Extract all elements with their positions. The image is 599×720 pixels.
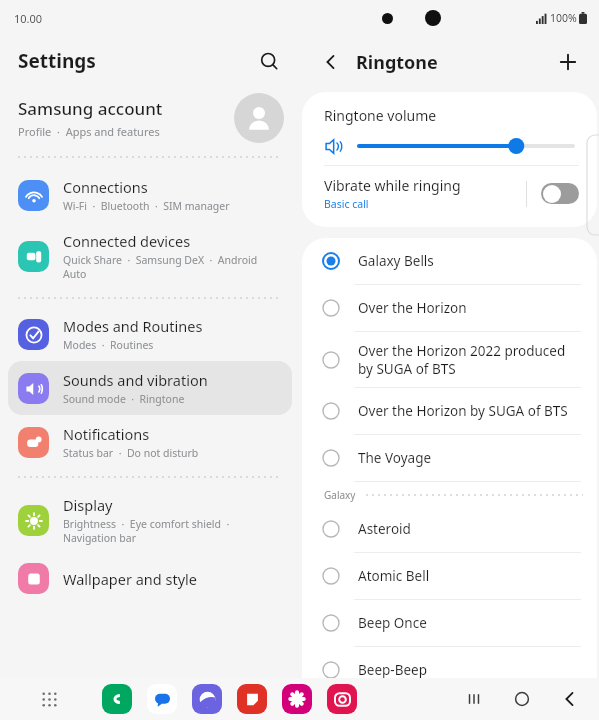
staticText: Connected devices — [63, 231, 191, 251]
staticText: Samsung account — [18, 97, 163, 120]
button[interactable]: The Voyage — [302, 435, 597, 482]
button[interactable]: Beep-Beep — [302, 647, 597, 694]
button[interactable]: Display — [8, 486, 292, 554]
button[interactable]: Internet — [192, 684, 222, 714]
staticText: Quick Share · Samsung DeX · Android Auto — [63, 253, 258, 281]
button[interactable]: Connected devices — [8, 222, 292, 290]
button[interactable]: Wallpaper and style — [8, 554, 292, 603]
staticText: Basic call — [324, 197, 369, 211]
button[interactable]: Sounds and vibration — [8, 361, 292, 415]
staticText: Beep-Beep — [358, 661, 427, 679]
button[interactable]: Gallery — [282, 684, 312, 714]
button[interactable]: Home — [507, 684, 537, 714]
staticText: 10.00 — [14, 11, 43, 26]
staticText: Modes and Routines — [63, 316, 203, 336]
staticText: Sound mode · Ringtone — [63, 392, 185, 406]
button[interactable]: Apps — [36, 686, 62, 712]
staticText: Over the Horizon by SUGA of BTS — [358, 402, 568, 420]
button[interactable]: Over the Horizon — [302, 285, 597, 332]
staticText: Atomic Bell — [358, 567, 430, 585]
button[interactable]: Instagram — [327, 684, 357, 714]
button[interactable]: Vibrate while ringing — [324, 166, 579, 221]
staticText: Asteroid — [358, 520, 411, 538]
button[interactable]: Samsung account — [0, 89, 300, 147]
staticText: Connections — [63, 177, 148, 197]
staticText: Brightness · Eye comfort shield · Naviga… — [63, 517, 230, 545]
staticText: Modes · Routines — [63, 338, 154, 352]
button[interactable]: Connections — [8, 168, 292, 222]
button[interactable]: Vibrate while ringing toggle — [541, 183, 579, 204]
button[interactable]: Notes — [237, 684, 267, 714]
staticText: 100% — [550, 11, 577, 25]
staticText: Vibrate while ringing — [324, 176, 461, 195]
staticText: Ringtone volume — [324, 106, 437, 125]
staticText: Galaxy Bells — [358, 252, 434, 270]
button[interactable] — [359, 135, 573, 157]
button[interactable]: Asteroid — [302, 506, 597, 553]
button[interactable]: Back — [314, 45, 348, 79]
staticText: Display — [63, 495, 113, 515]
staticText: Wi-Fi · Bluetooth · SIM manager — [63, 199, 230, 213]
staticText: Profile · Apps and features — [18, 124, 160, 139]
staticText: Beep Once — [358, 614, 427, 632]
staticText: Wallpaper and style — [63, 569, 197, 589]
button[interactable]: Notifications — [8, 415, 292, 469]
staticText: Galaxy — [324, 488, 356, 502]
staticText: Sounds and vibration — [63, 370, 208, 390]
staticText: Over the Horizon 2022 produced by SUGA o… — [358, 342, 566, 378]
staticText: Over the Horizon — [358, 299, 467, 317]
staticText: Status bar · Do not disturb — [63, 446, 199, 460]
button[interactable]: Beep Once — [302, 600, 597, 647]
button[interactable]: Over the Horizon by SUGA of BTS — [302, 388, 597, 435]
button[interactable]: Phone — [102, 684, 132, 714]
button[interactable]: Messages — [147, 684, 177, 714]
button[interactable]: Recents — [459, 684, 489, 714]
staticText: Notifications — [63, 424, 150, 444]
button[interactable]: Atomic Bell — [302, 553, 597, 600]
button[interactable]: Search — [250, 42, 288, 80]
button[interactable]: Galaxy Bells — [302, 238, 597, 285]
button[interactable]: Back — [555, 684, 585, 714]
staticText: Settings — [18, 48, 96, 74]
staticText: The Voyage — [358, 449, 432, 467]
staticText: Ringtone — [356, 50, 438, 75]
button[interactable]: Over the Horizon 2022 produced by SUGA o… — [302, 332, 597, 388]
button[interactable]: Add — [549, 43, 587, 81]
button[interactable]: Modes and Routines — [8, 307, 292, 361]
